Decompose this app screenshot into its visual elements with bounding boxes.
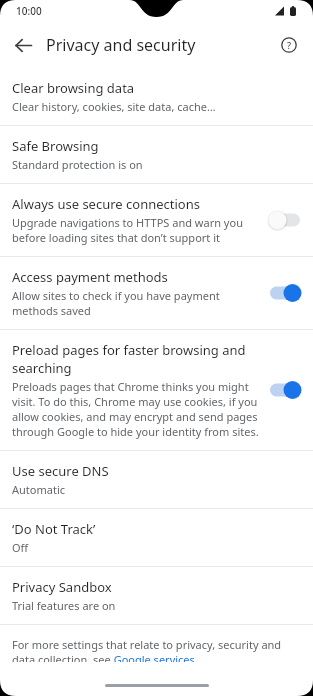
staticText: Access payment methods	[12, 268, 168, 286]
staticText: Always use secure connections	[12, 195, 200, 213]
button[interactable]: ‘Do Not Track’	[0, 509, 313, 566]
button[interactable]: Always use secure connections	[267, 209, 303, 231]
staticText: Off	[12, 540, 29, 555]
button[interactable]: Privacy Sandbox	[0, 567, 313, 624]
button[interactable]: Preload pages for faster browsing and se…	[267, 379, 303, 401]
staticText: For more settings that relate to privacy…	[12, 637, 299, 662]
button[interactable]: Clear browsing data	[0, 68, 313, 125]
button[interactable]: Use secure DNS	[0, 451, 313, 508]
staticText: ?	[287, 39, 292, 51]
staticText: Allow sites to check if you have payment…	[12, 288, 259, 318]
button[interactable]: For more settings that relate to privacy…	[0, 625, 313, 674]
staticText: Privacy and security	[46, 34, 273, 56]
staticText: Upgrade navigations to HTTPS and warn yo…	[12, 215, 259, 245]
staticText: Clear browsing data	[12, 79, 135, 97]
button[interactable]: Back	[6, 28, 40, 62]
button[interactable]: Access payment methods	[267, 282, 303, 304]
staticText: Safe Browsing	[12, 137, 99, 155]
staticText: Preloads pages that Chrome thinks you mi…	[12, 379, 259, 439]
staticText: Use secure DNS	[12, 462, 109, 480]
button[interactable]: Safe Browsing	[0, 126, 313, 183]
staticText: Trial features are on	[12, 598, 116, 613]
button[interactable]: Preload pages for faster browsing and se…	[0, 330, 313, 450]
button[interactable]: Access payment methods	[0, 257, 313, 329]
staticText: Privacy Sandbox	[12, 578, 112, 596]
staticText: Standard protection is on	[12, 157, 143, 172]
button[interactable]: Help	[273, 29, 305, 61]
staticText: Clear history, cookies, site data, cache…	[12, 99, 216, 114]
staticText: Automatic	[12, 482, 65, 497]
staticText: ‘Do Not Track’	[12, 520, 96, 538]
staticText: 10:00	[16, 4, 42, 18]
staticText: Preload pages for faster browsing and se…	[12, 341, 259, 377]
button[interactable]: Always use secure connections	[0, 184, 313, 256]
